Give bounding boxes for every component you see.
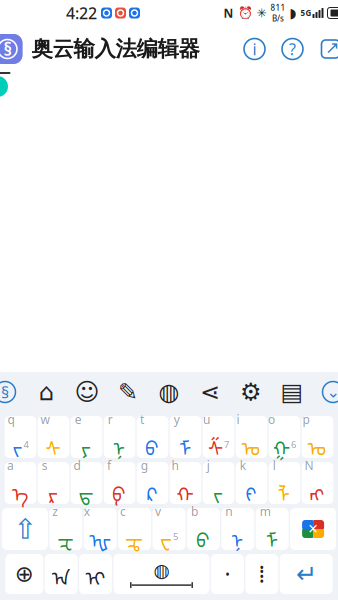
staticText: 4 bbox=[23, 438, 28, 451]
button[interactable]: e bbox=[71, 416, 102, 458]
button[interactable]: u bbox=[203, 416, 234, 458]
button[interactable]: i bbox=[236, 416, 267, 458]
staticText: ᠩ bbox=[309, 473, 324, 507]
staticText: c bbox=[120, 503, 126, 519]
staticText: y bbox=[174, 411, 180, 427]
staticText: ⁞ bbox=[259, 559, 265, 589]
button[interactable]: g bbox=[137, 462, 168, 504]
staticText: j bbox=[207, 457, 210, 473]
button[interactable]: Home bbox=[29, 375, 62, 409]
button[interactable]: r bbox=[104, 416, 135, 458]
button[interactable]: w bbox=[38, 416, 69, 458]
button[interactable]: Info bbox=[235, 30, 273, 68]
button[interactable]: l bbox=[269, 462, 300, 504]
staticText: ᠺ bbox=[146, 473, 157, 507]
button[interactable]: Shift bbox=[2, 508, 48, 550]
button[interactable]: Collapse bbox=[316, 375, 338, 409]
button[interactable]: Voice bbox=[152, 375, 185, 409]
staticText: ᠽ bbox=[57, 519, 73, 553]
staticText: q bbox=[7, 411, 14, 427]
staticText: m bbox=[260, 503, 271, 519]
button[interactable]: q bbox=[5, 416, 36, 458]
button[interactable]: Mongolian I bbox=[79, 554, 112, 594]
staticText: N bbox=[304, 457, 313, 473]
staticText: 6 bbox=[291, 438, 296, 451]
button[interactable]: Space bbox=[113, 554, 209, 594]
staticText: o bbox=[268, 411, 275, 427]
staticText: ᠤ bbox=[307, 427, 326, 461]
staticText: ⚙ bbox=[240, 378, 262, 406]
button[interactable]: Input method bbox=[0, 375, 21, 409]
button[interactable]: m bbox=[256, 508, 289, 550]
staticText: l bbox=[273, 457, 276, 473]
staticText: ᠨ bbox=[231, 519, 243, 553]
button[interactable]: Share bbox=[311, 30, 338, 68]
button[interactable]: Keyboard layout bbox=[275, 375, 308, 409]
button[interactable]: k bbox=[236, 462, 267, 504]
staticText: w bbox=[40, 411, 49, 427]
button[interactable]: Emoji bbox=[70, 375, 103, 409]
staticText: ᠨ bbox=[113, 427, 125, 461]
staticText: ⏰ bbox=[237, 6, 252, 20]
staticText: ᠵ bbox=[12, 427, 22, 461]
staticText: ᠾ bbox=[89, 519, 111, 553]
button[interactable]: j bbox=[203, 462, 234, 504]
button[interactable]: Symbols bbox=[245, 554, 278, 594]
staticText: ↵ bbox=[296, 560, 317, 588]
button[interactable]: y bbox=[170, 416, 201, 458]
button[interactable]: Period bbox=[211, 554, 244, 594]
button[interactable]: d bbox=[71, 462, 102, 504]
staticText: ᠯ bbox=[278, 473, 290, 507]
button[interactable]: v bbox=[152, 508, 185, 550]
button[interactable]: x bbox=[84, 508, 117, 550]
staticText: ᠪ bbox=[145, 427, 159, 461]
button[interactable]: Return bbox=[280, 554, 333, 594]
button[interactable]: h bbox=[170, 462, 201, 504]
staticText: f bbox=[107, 457, 111, 473]
staticText: ᠣ bbox=[241, 427, 260, 461]
staticText: ᠭ bbox=[273, 427, 290, 461]
staticText: N bbox=[223, 5, 233, 21]
button[interactable]: N bbox=[302, 462, 333, 504]
staticText: ᠠ bbox=[52, 557, 71, 591]
staticText: ᠼ bbox=[125, 519, 143, 553]
staticText: s bbox=[42, 457, 48, 473]
button[interactable]: Help bbox=[273, 30, 311, 68]
button[interactable]: n bbox=[221, 508, 254, 550]
staticText: 5 bbox=[173, 530, 178, 543]
button[interactable]: c bbox=[118, 508, 151, 550]
staticText: 5G bbox=[300, 8, 311, 18]
staticText: 811 bbox=[270, 2, 285, 13]
button[interactable]: Mongolian A bbox=[45, 554, 78, 594]
staticText: ⋖ bbox=[200, 378, 220, 406]
staticText: n bbox=[225, 503, 232, 519]
staticText: x bbox=[84, 503, 90, 519]
button[interactable]: Share bbox=[193, 375, 226, 409]
staticText: ◍ bbox=[158, 378, 179, 406]
button[interactable]: t bbox=[137, 416, 168, 458]
staticText: e bbox=[75, 411, 82, 427]
staticText: ◍ bbox=[153, 560, 169, 581]
button[interactable]: p bbox=[302, 416, 333, 458]
button[interactable]: s bbox=[38, 462, 69, 504]
staticText: r bbox=[108, 411, 113, 427]
staticText: ⇧ bbox=[13, 513, 36, 545]
button[interactable]: f bbox=[104, 462, 135, 504]
button[interactable]: a bbox=[5, 462, 36, 504]
button[interactable]: Settings bbox=[234, 375, 267, 409]
staticText: ᠢ bbox=[86, 557, 106, 591]
staticText: ⌄ bbox=[326, 383, 338, 401]
staticText: g bbox=[141, 457, 148, 473]
button[interactable]: b bbox=[187, 508, 220, 550]
staticText: ? bbox=[289, 38, 296, 60]
button[interactable]: o bbox=[269, 416, 300, 458]
button[interactable]: Delete bbox=[290, 508, 336, 550]
button[interactable]: Switch language bbox=[5, 554, 43, 594]
staticText: d bbox=[73, 457, 80, 473]
button[interactable]: Handwriting bbox=[111, 375, 144, 409]
staticText: ᠡ bbox=[12, 473, 28, 507]
staticText: ᠬ bbox=[176, 473, 193, 507]
staticText: h bbox=[171, 457, 178, 473]
staticText: ᠰ bbox=[45, 427, 60, 461]
button[interactable]: z bbox=[49, 508, 82, 550]
